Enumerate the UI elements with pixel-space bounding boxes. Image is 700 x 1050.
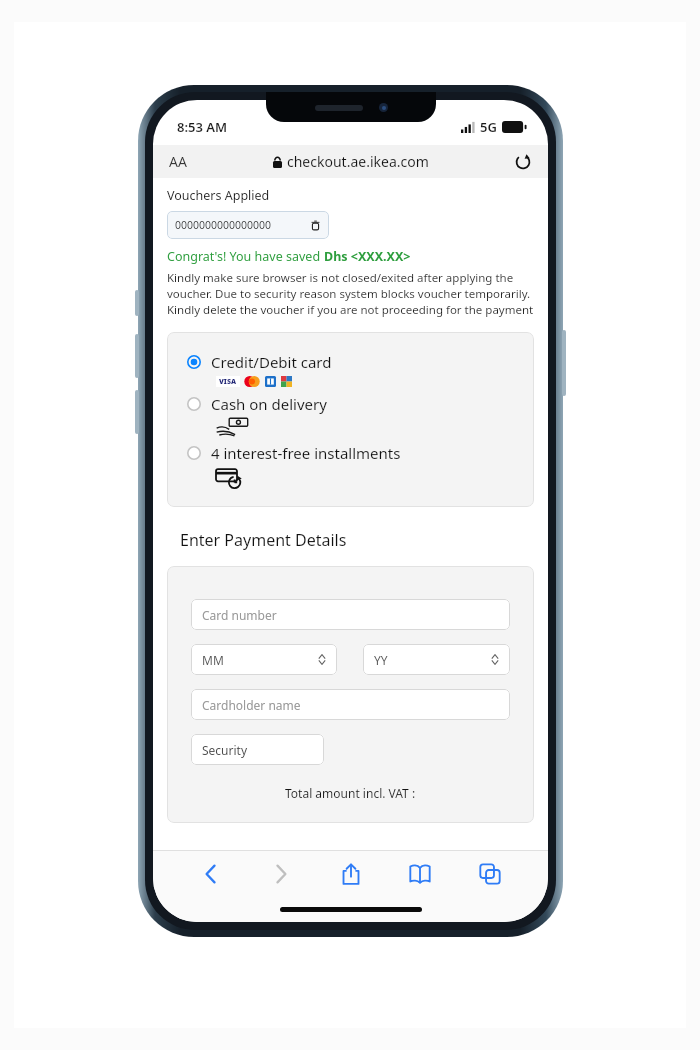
staticText: Enter Payment Details [180, 529, 347, 551]
staticText: VISA [219, 377, 237, 387]
button[interactable]: MM [191, 644, 337, 675]
button[interactable]: Card number [191, 599, 510, 630]
staticText: Cardholder name [202, 697, 301, 713]
button[interactable]: Tabs [468, 852, 512, 896]
button[interactable]: Share [329, 852, 373, 896]
staticText: Cash on delivery [211, 394, 327, 414]
button[interactable]: Cash on delivery [187, 394, 520, 414]
staticText: Total amount incl. VAT : [285, 785, 416, 801]
staticText: Congrat's! You have saved [167, 248, 324, 265]
staticText: 8:53 AM [177, 118, 228, 136]
staticText: Credit/Debit card [211, 352, 332, 372]
button[interactable]: Reload [512, 151, 534, 173]
button[interactable]: 4 interest-free installments [187, 443, 520, 463]
button[interactable]: 0000000000000000 [167, 211, 329, 239]
button[interactable]: Back [189, 852, 233, 896]
staticText: 4 interest-free installments [211, 443, 401, 463]
staticText: YY [374, 652, 388, 668]
button[interactable]: Security [191, 734, 324, 765]
staticText: Card number [202, 607, 277, 623]
button[interactable]: YY [363, 644, 510, 675]
button[interactable]: Cardholder name [191, 689, 510, 720]
staticText: Security [202, 742, 248, 758]
staticText: Kindly make sure browser is not closed/e… [167, 270, 534, 318]
button[interactable]: Credit/Debit card [187, 352, 520, 372]
staticText: 5G [480, 118, 497, 136]
button[interactable]: AA [169, 152, 187, 171]
staticText: checkout.ae.ikea.com [287, 152, 429, 171]
other: Delete voucher [310, 220, 321, 231]
staticText: 0000000000000000 [175, 218, 272, 232]
button[interactable]: Bookmarks [398, 852, 442, 896]
staticText: Dhs <XXX.XX> [324, 248, 411, 265]
button[interactable]: checkout.ae.ikea.com [273, 152, 429, 171]
staticText: Vouchers Applied [167, 187, 270, 204]
button[interactable]: Forward [259, 852, 303, 896]
staticText: MM [202, 652, 224, 668]
